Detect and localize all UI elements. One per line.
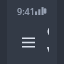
staticText: Overview [47,22,49,62]
button[interactable]: Menu [15,29,41,55]
staticText: 9:41 [17,5,35,17]
